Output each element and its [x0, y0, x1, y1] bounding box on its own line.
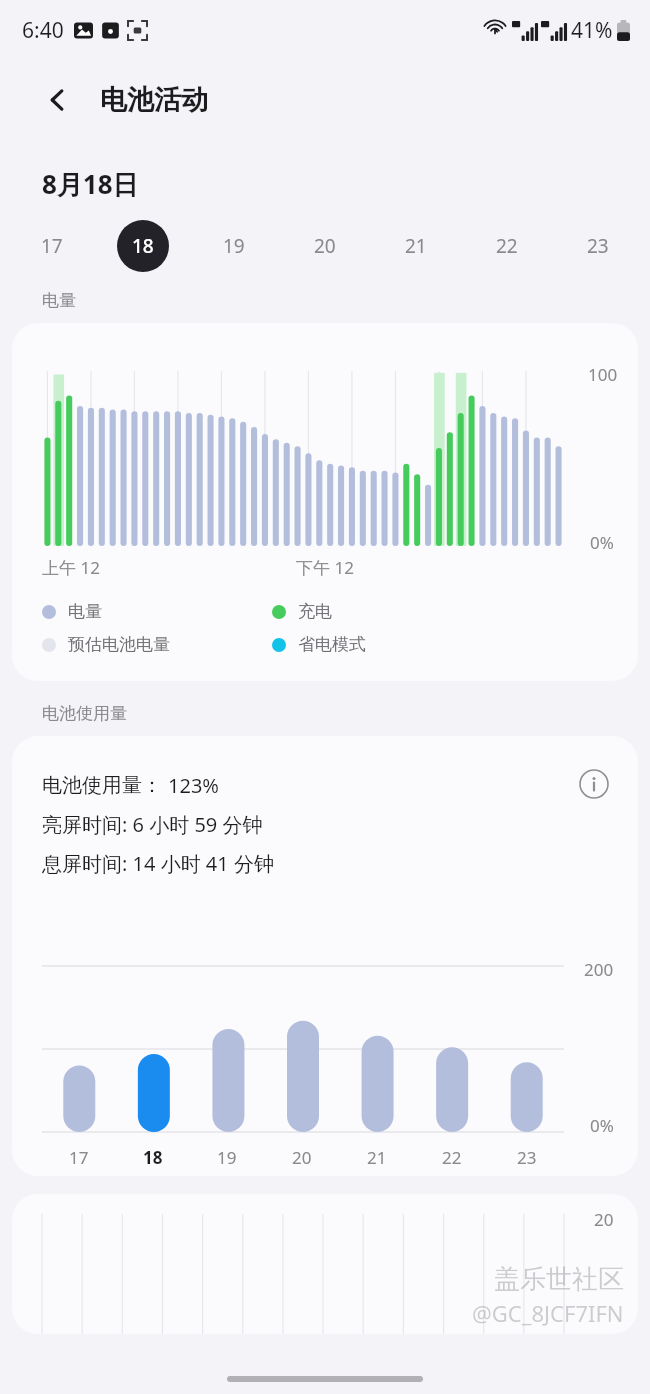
button[interactable]: 20: [299, 220, 351, 272]
button[interactable]: 22: [481, 220, 533, 272]
staticText: 18: [132, 233, 154, 259]
staticText: 6:40: [22, 16, 64, 45]
button[interactable]: 21: [390, 220, 442, 272]
staticText: 19: [217, 1146, 237, 1169]
button[interactable]: Back: [36, 78, 80, 122]
button[interactable]: Info: [572, 762, 616, 806]
staticText: 20: [314, 233, 336, 259]
staticText: 电量: [42, 290, 76, 311]
staticText: 19: [223, 233, 245, 259]
staticText: 下午 12: [296, 556, 354, 579]
staticText: 21: [367, 1146, 387, 1169]
staticText: 亮屏时间: 6 小时 59 分钟: [42, 811, 263, 838]
staticText: 41%: [571, 16, 613, 45]
staticText: 20: [594, 1208, 614, 1231]
staticText: 预估电池电量: [68, 634, 170, 655]
staticText: 22: [496, 233, 518, 259]
staticText: 电量: [68, 601, 102, 622]
button[interactable]: 18: [117, 220, 169, 272]
staticText: 充电: [298, 601, 332, 622]
staticText: 123%: [168, 772, 219, 799]
staticText: 22: [442, 1146, 462, 1169]
staticText: 电池使用量: [42, 703, 127, 724]
staticText: 盖乐世社区: [494, 1263, 624, 1296]
staticText: 20: [292, 1146, 312, 1169]
staticText: 0%: [590, 531, 614, 554]
staticText: 21: [405, 233, 427, 259]
staticText: 23: [587, 233, 609, 259]
staticText: 8月18日: [42, 166, 139, 202]
staticText: 上午 12: [42, 556, 100, 579]
staticText: 100: [588, 363, 618, 386]
button[interactable]: 23: [572, 220, 624, 272]
staticText: @GC_8JCF7IFN: [472, 1298, 624, 1328]
staticText: 200: [584, 958, 614, 981]
staticText: 息屏时间: 14 小时 41 分钟: [42, 850, 274, 877]
staticText: 17: [69, 1146, 89, 1169]
staticText: 18: [143, 1146, 163, 1169]
staticText: 电池使用量：: [42, 773, 162, 798]
button[interactable]: 17: [26, 220, 78, 272]
button[interactable]: 19: [208, 220, 260, 272]
staticText: 23: [517, 1146, 537, 1169]
staticText: 17: [41, 233, 63, 259]
staticText: 0%: [590, 1114, 614, 1137]
staticText: 电池活动: [100, 83, 208, 117]
staticText: 省电模式: [298, 634, 366, 655]
